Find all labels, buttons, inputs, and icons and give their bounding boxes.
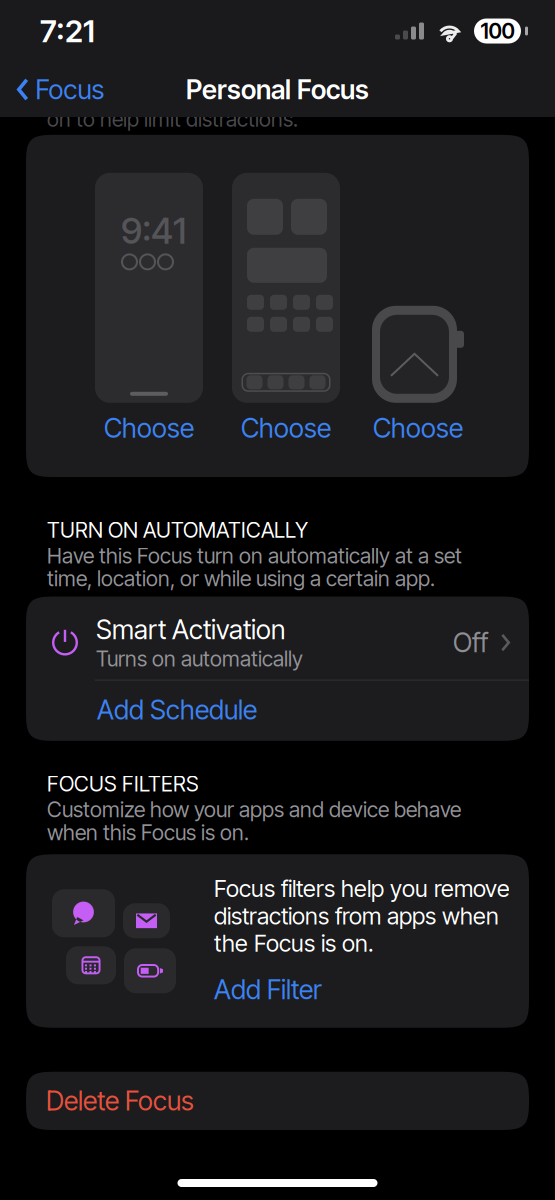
staticText: Off: [453, 626, 488, 659]
button[interactable]: Focus: [0, 65, 104, 114]
staticText: Add Schedule: [97, 694, 257, 726]
staticText: Personal Focus: [186, 73, 369, 106]
button[interactable]: Add Filter: [214, 971, 322, 1008]
staticText: 7:21: [40, 12, 95, 49]
staticText: Delete Focus: [46, 1085, 194, 1117]
staticText: Turns on automatically: [96, 646, 303, 672]
staticText: 100: [480, 18, 514, 44]
staticText: Focus filters help you remove distractio…: [214, 874, 510, 957]
button[interactable]: Delete Focus: [26, 1072, 529, 1130]
button[interactable]: Choose: [237, 409, 335, 447]
button[interactable]: Add Schedule: [26, 681, 529, 741]
staticText: Customize how your apps and device behav…: [47, 797, 461, 845]
button[interactable]: Smart Activation: [26, 596, 529, 680]
staticText: 9:41: [121, 209, 186, 252]
staticText: FOCUS FILTERS: [47, 771, 199, 797]
staticText: Focus: [35, 73, 104, 106]
staticText: Choose: [104, 412, 194, 444]
button[interactable]: Choose: [369, 409, 467, 447]
staticText: Smart Activation: [96, 613, 285, 646]
staticText: Add Filter: [214, 973, 322, 1006]
staticText: Choose: [241, 412, 331, 444]
button[interactable]: Choose: [100, 409, 198, 447]
staticText: on to help limit distractions.: [47, 106, 298, 132]
staticText: Choose: [373, 412, 463, 444]
staticText: TURN ON AUTOMATICALLY: [47, 517, 308, 543]
staticText: Have this Focus turn on automatically at…: [47, 543, 462, 591]
